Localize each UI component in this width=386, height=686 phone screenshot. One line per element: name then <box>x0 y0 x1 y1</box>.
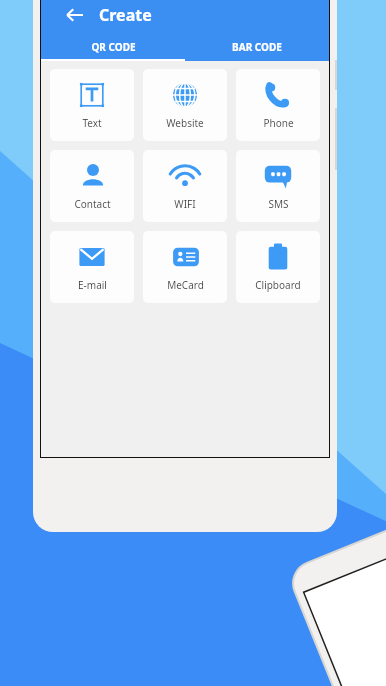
staticText: Contact <box>74 197 111 211</box>
button[interactable]: Website <box>143 69 227 141</box>
staticText: BAR CODE <box>232 40 282 54</box>
staticText: QR CODE <box>91 40 136 54</box>
button[interactable]: QR CODE <box>41 33 185 61</box>
staticText: Phone <box>263 116 294 130</box>
staticText: Clipboard <box>255 278 301 292</box>
button[interactable]: Phone <box>236 69 320 141</box>
staticText: E-mail <box>78 278 107 292</box>
button[interactable]: WIFI <box>143 150 227 222</box>
staticText: Website <box>166 116 204 130</box>
button[interactable]: E-mail <box>50 231 134 303</box>
button[interactable]: MeCard <box>143 231 227 303</box>
button[interactable]: Back <box>59 0 89 30</box>
staticText: Create <box>99 4 152 26</box>
button[interactable]: SMS <box>236 150 320 222</box>
staticText: WIFI <box>174 197 196 211</box>
button[interactable]: Clipboard <box>236 231 320 303</box>
button[interactable]: BAR CODE <box>185 33 329 61</box>
button[interactable]: Text <box>50 69 134 141</box>
staticText: MeCard <box>167 278 204 292</box>
staticText: SMS <box>268 197 289 211</box>
button[interactable]: Contact <box>50 150 134 222</box>
staticText: Text <box>82 116 102 130</box>
